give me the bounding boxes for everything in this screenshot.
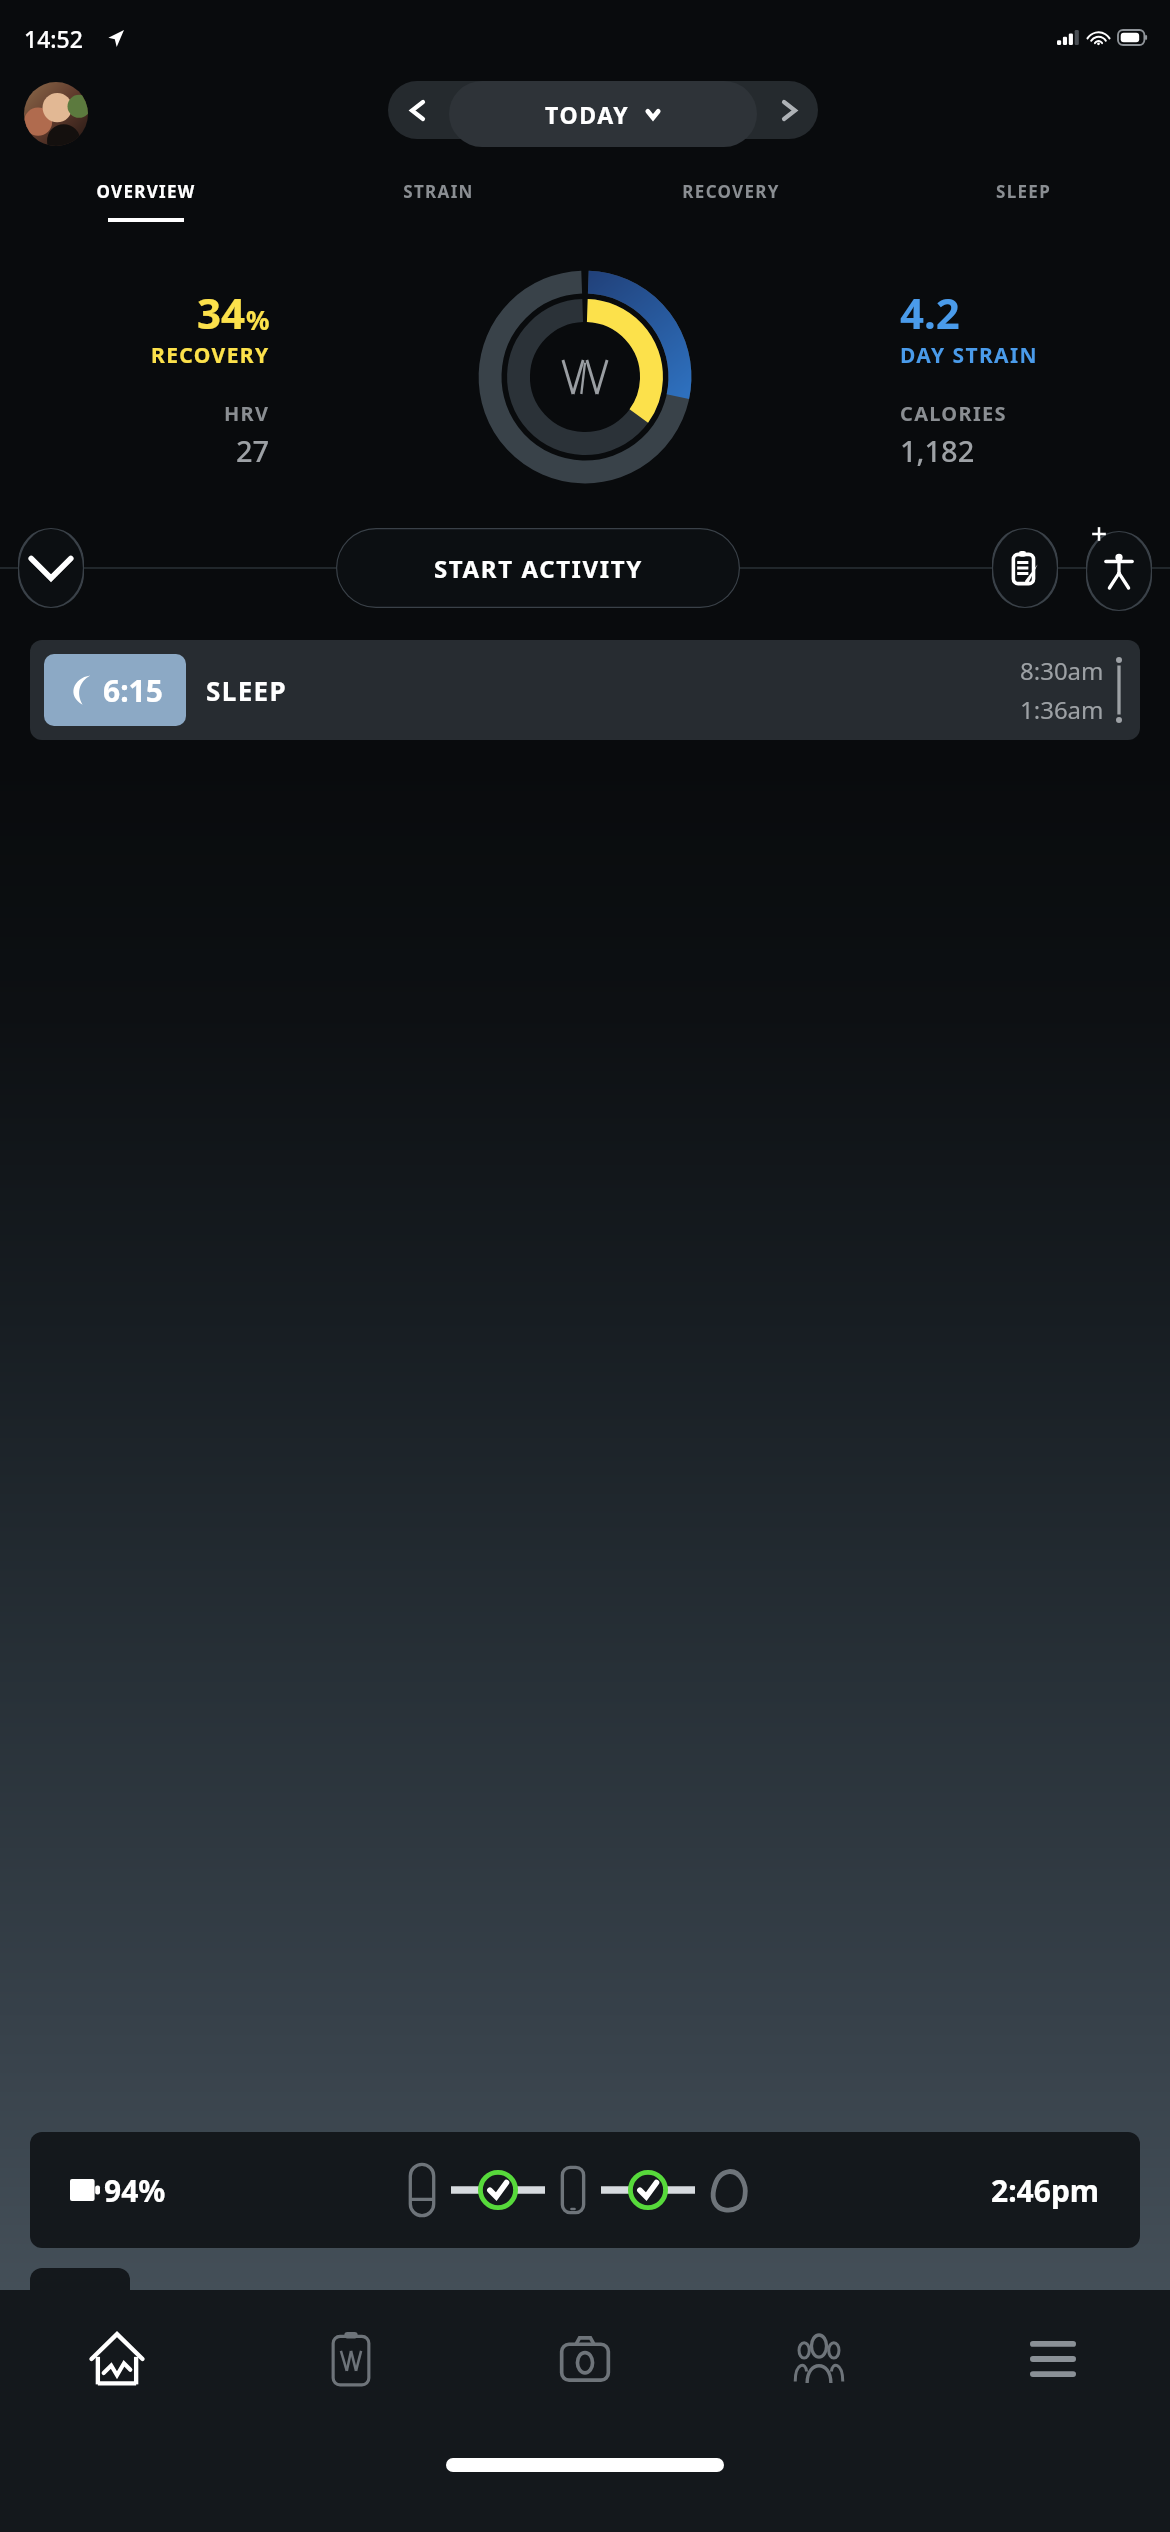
button[interactable]: Device sync status xyxy=(30,2132,1140,2248)
staticText: SLEEP xyxy=(996,180,1051,203)
button[interactable]: Previous day xyxy=(388,81,446,139)
staticText: 8:30am xyxy=(1020,654,1104,687)
button[interactable]: Next day xyxy=(760,81,818,139)
button[interactable]: Recovery and strain rings xyxy=(476,268,694,486)
staticText: 14:52 xyxy=(24,23,83,54)
staticText: CALORIES xyxy=(900,400,1007,427)
staticText: 2:46pm xyxy=(991,2170,1100,2211)
button[interactable]: 6:15 xyxy=(30,640,1140,740)
staticText: HRV xyxy=(224,400,270,427)
button[interactable]: Profile xyxy=(24,82,88,146)
staticText: TODAY xyxy=(545,99,630,130)
button[interactable]: OVERVIEW xyxy=(0,166,292,234)
staticText: SLEEP xyxy=(206,673,288,708)
staticText: RECOVERY xyxy=(682,180,780,203)
staticText: STRAIN xyxy=(403,180,474,203)
staticText: OVERVIEW xyxy=(96,180,196,203)
button[interactable]: Add activity xyxy=(1086,531,1152,611)
staticText: 1,182 xyxy=(900,431,975,470)
button[interactable]: Home xyxy=(0,2304,234,2414)
button[interactable]: Community xyxy=(702,2304,936,2414)
button[interactable]: Journal xyxy=(234,2304,468,2414)
button[interactable]: START ACTIVITY xyxy=(336,528,740,608)
staticText: START ACTIVITY xyxy=(434,552,643,585)
staticText: 1:36am xyxy=(1020,693,1104,726)
staticText: % xyxy=(246,302,270,337)
button[interactable]: Collapse xyxy=(18,528,84,608)
staticText: 27 xyxy=(236,431,270,470)
button[interactable]: STRAIN xyxy=(292,166,584,234)
button[interactable]: SLEEP xyxy=(877,166,1170,234)
button[interactable]: Journal xyxy=(992,528,1058,608)
staticText: RECOVERY xyxy=(151,341,270,370)
staticText: 6:15 xyxy=(103,670,163,711)
button[interactable]: Menu xyxy=(936,2304,1170,2414)
staticText: 34 xyxy=(197,284,246,341)
button[interactable]: Camera xyxy=(468,2304,702,2414)
staticText: DAY STRAIN xyxy=(900,341,1039,370)
button[interactable]: TODAY xyxy=(449,81,757,147)
button[interactable]: RECOVERY xyxy=(584,166,877,234)
staticText: 94% xyxy=(104,2170,166,2211)
staticText: 4.2 xyxy=(900,284,960,341)
